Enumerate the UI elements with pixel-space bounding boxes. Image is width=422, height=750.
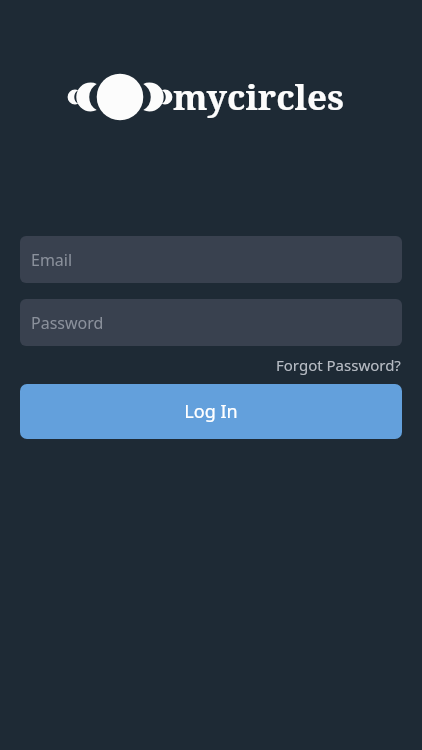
staticText: mycircles bbox=[173, 73, 344, 121]
staticText: Forgot Password? bbox=[276, 355, 401, 375]
other: mycircles logo bbox=[78, 73, 162, 121]
button[interactable]: Password bbox=[20, 299, 402, 346]
staticText: Email bbox=[31, 249, 73, 271]
staticText: Password bbox=[31, 312, 104, 334]
staticText: Log In bbox=[184, 399, 238, 424]
button[interactable]: Email bbox=[20, 236, 402, 283]
button[interactable]: Forgot Password? bbox=[275, 351, 402, 379]
button[interactable]: Log In bbox=[20, 384, 402, 439]
